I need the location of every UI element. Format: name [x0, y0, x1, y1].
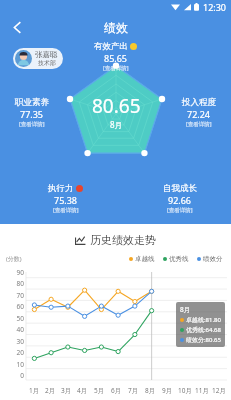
button[interactable]: 张嘉聪: [13, 48, 63, 69]
staticText: 卓越线: [135, 255, 155, 263]
staticText: 有效产出: [94, 41, 128, 52]
staticText: 12月: [212, 386, 226, 395]
button[interactable]: 投入程度: [182, 97, 216, 128]
button[interactable]: 职业素养: [15, 97, 49, 128]
button[interactable]: 卓越线: [129, 255, 155, 263]
staticText: 5月: [94, 386, 105, 395]
staticText: 77.35: [20, 108, 44, 120]
staticText: 张嘉聪: [35, 50, 58, 59]
staticText: 80: [16, 279, 24, 288]
staticText: 4月: [77, 386, 88, 395]
staticText: 6月: [111, 386, 122, 395]
staticText: 执行力: [48, 183, 74, 194]
staticText: [查看详情]: [186, 120, 212, 128]
staticText: [查看详情]: [103, 64, 129, 72]
button[interactable]: 执行力: [48, 183, 83, 214]
staticText: 投入程度: [182, 97, 216, 108]
staticText: 10月: [178, 386, 192, 395]
staticText: 85.65: [104, 52, 128, 64]
staticText: 90: [16, 268, 24, 277]
staticText: 11月: [195, 386, 209, 395]
staticText: 75.38: [54, 194, 78, 206]
staticText: 优秀线:64.68: [186, 326, 221, 334]
staticText: 0: [20, 371, 24, 380]
button[interactable]: Back: [4, 14, 30, 40]
staticText: 绩效分:80.65: [186, 336, 221, 344]
staticText: 60: [16, 302, 24, 311]
staticText: 40: [16, 325, 24, 334]
staticText: 70: [16, 291, 24, 300]
staticText: 10: [16, 360, 24, 369]
staticText: 92.66: [168, 194, 192, 206]
staticText: 72.24: [187, 108, 211, 120]
staticText: (分数): [6, 255, 22, 263]
staticText: 绩效分: [203, 255, 223, 263]
staticText: 优秀线: [169, 255, 189, 263]
staticText: 80.65: [92, 93, 141, 119]
staticText: 1月: [29, 386, 40, 395]
staticText: 技术部: [38, 59, 56, 67]
staticText: 职业素养: [15, 97, 49, 108]
staticText: [查看详情]: [53, 206, 79, 214]
staticText: 自我成长: [163, 183, 197, 194]
staticText: 3月: [61, 386, 72, 395]
staticText: 8月: [180, 305, 191, 314]
button[interactable]: 自我成长: [163, 183, 197, 214]
staticText: [查看详情]: [19, 120, 45, 128]
staticText: 9月: [162, 386, 173, 395]
staticText: 历史绩效走势: [90, 233, 156, 247]
staticText: 2月: [45, 386, 56, 395]
button[interactable]: 优秀线: [163, 255, 189, 263]
staticText: 50: [16, 314, 24, 323]
staticText: 30: [16, 337, 24, 346]
staticText: 7月: [128, 386, 139, 395]
staticText: 卓越线:81.80: [186, 316, 221, 324]
staticText: 8月: [110, 119, 123, 130]
staticText: 12:30: [203, 1, 227, 13]
staticText: 8月: [145, 386, 156, 395]
staticText: 绩效: [104, 20, 128, 35]
staticText: 20: [16, 348, 24, 357]
button[interactable]: 有效产出: [94, 41, 137, 72]
staticText: [查看详情]: [167, 206, 193, 214]
button[interactable]: 绩效分: [197, 255, 223, 263]
